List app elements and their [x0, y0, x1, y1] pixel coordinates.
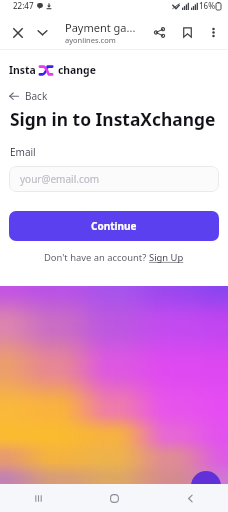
button[interactable]: Home	[76, 484, 152, 512]
staticText: 16%	[199, 0, 215, 11]
button[interactable]: Back	[9, 89, 48, 103]
staticText: Email	[10, 145, 36, 159]
staticText: Back	[25, 89, 48, 103]
staticText: change	[58, 63, 96, 77]
staticText: 22:47	[13, 0, 34, 11]
button[interactable]: More options	[201, 20, 226, 45]
staticText: your@email.com	[20, 172, 100, 186]
button[interactable]: Bookmark	[175, 20, 200, 45]
button[interactable]: Recent apps	[0, 484, 76, 512]
staticText: ayonlines.com	[65, 35, 116, 45]
button[interactable]: Action	[191, 471, 221, 501]
button[interactable]: Back	[152, 484, 228, 512]
staticText: Sign in to InstaXchange	[10, 107, 216, 131]
button[interactable]: your@email.com	[9, 166, 219, 192]
staticText: Don't have an account?	[44, 251, 149, 264]
button[interactable]: Expand	[30, 20, 55, 45]
button[interactable]: Continue	[9, 211, 219, 241]
button[interactable]: Sign Up	[149, 251, 184, 264]
button[interactable]: Close	[5, 20, 30, 45]
staticText: Continue	[91, 219, 137, 233]
button[interactable]: Share	[147, 20, 172, 45]
staticText: Payment ga...	[65, 20, 136, 35]
staticText: Insta	[9, 63, 36, 77]
